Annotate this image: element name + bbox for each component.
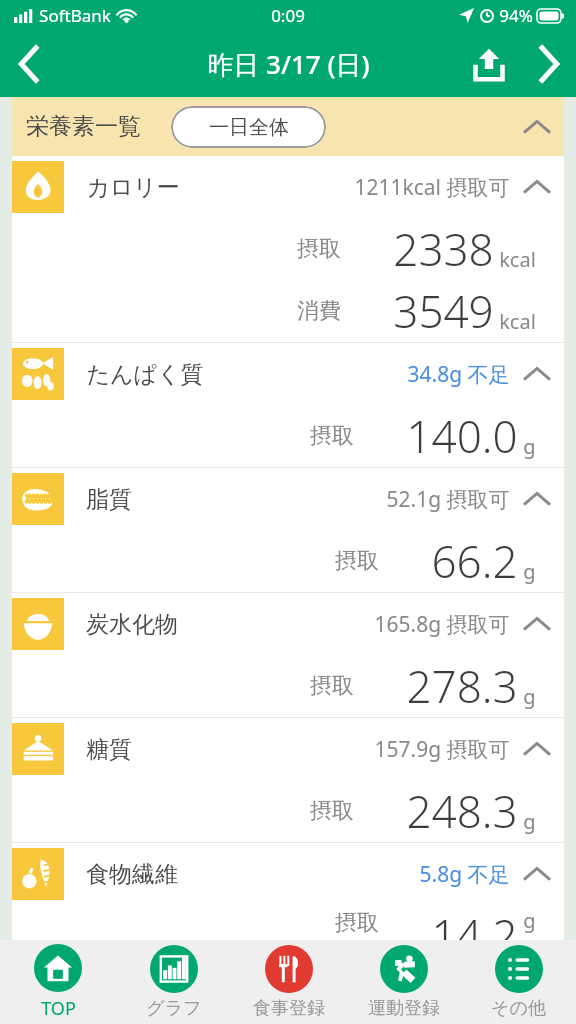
- staticText: 165.8g 摂取可: [374, 610, 510, 639]
- staticText: 34.8g 不足: [407, 360, 510, 389]
- staticText: 52.1g 摂取可: [386, 485, 510, 514]
- staticText: 94%: [499, 4, 533, 27]
- staticText: 摂取: [297, 235, 341, 263]
- staticText: グラフ: [146, 997, 202, 1020]
- staticText: たんぱく質: [86, 360, 204, 389]
- button[interactable]: Previous day: [0, 34, 60, 94]
- button[interactable]: 栄養素一覧: [12, 97, 564, 156]
- staticText: kcal: [499, 246, 536, 273]
- staticText: 摂取: [335, 547, 379, 575]
- staticText: 脂質: [86, 485, 132, 514]
- staticText: kcal: [499, 308, 536, 335]
- staticText: g: [523, 907, 536, 934]
- staticText: g: [523, 808, 536, 835]
- staticText: 140.0: [406, 406, 518, 466]
- button[interactable]: 食事登録: [231, 940, 346, 1024]
- button[interactable]: Next day: [520, 36, 576, 92]
- staticText: 一日全体: [209, 115, 289, 140]
- staticText: 0:09: [271, 4, 305, 27]
- button[interactable]: Share: [458, 33, 520, 95]
- staticText: 278.3: [406, 656, 518, 716]
- button[interactable]: 糖質: [12, 718, 564, 780]
- staticText: 5.8g 不足: [419, 860, 510, 889]
- staticText: 248.3: [406, 781, 518, 841]
- staticText: 炭水化物: [86, 610, 178, 639]
- staticText: 食物繊維: [86, 860, 178, 889]
- staticText: 栄養素一覧: [26, 112, 141, 141]
- staticText: 2338: [393, 219, 494, 279]
- button[interactable]: 炭水化物: [12, 593, 564, 655]
- staticText: カロリー: [86, 173, 180, 202]
- staticText: g: [523, 558, 536, 585]
- staticText: 摂取: [310, 422, 354, 450]
- button[interactable]: 一日全体: [171, 106, 326, 148]
- staticText: 運動登録: [368, 997, 440, 1020]
- staticText: 1211kcal 摂取可: [354, 173, 510, 202]
- button[interactable]: 運動登録: [346, 940, 461, 1024]
- staticText: 摂取: [310, 797, 354, 825]
- staticText: 摂取: [335, 909, 379, 937]
- staticText: g: [523, 683, 536, 710]
- staticText: TOP: [41, 996, 76, 1021]
- staticText: その他: [491, 997, 546, 1020]
- staticText: SoftBank: [39, 4, 111, 27]
- staticText: 消費: [297, 297, 341, 325]
- staticText: 食事登録: [253, 997, 325, 1020]
- staticText: g: [523, 433, 536, 460]
- staticText: 摂取: [310, 672, 354, 700]
- button[interactable]: 食物繊維: [12, 843, 564, 905]
- button[interactable]: 脂質: [12, 468, 564, 530]
- staticText: 157.9g 摂取可: [374, 735, 510, 764]
- staticText: 14.2: [431, 905, 518, 940]
- button[interactable]: グラフ: [116, 940, 231, 1024]
- button[interactable]: たんぱく質: [12, 343, 564, 405]
- staticText: 昨日 3/17 (日): [207, 46, 370, 82]
- button[interactable]: カロリー: [12, 156, 564, 218]
- button[interactable]: その他: [461, 940, 576, 1024]
- staticText: 3549: [393, 281, 494, 341]
- staticText: 66.2: [431, 531, 518, 591]
- button[interactable]: TOP: [0, 940, 116, 1024]
- staticText: 糖質: [86, 735, 132, 764]
